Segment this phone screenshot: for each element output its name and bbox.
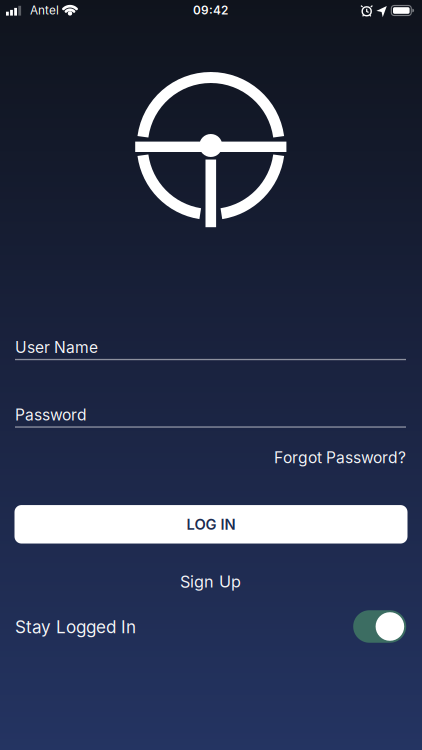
staticText: LOG IN [186, 515, 235, 533]
staticText: Password [15, 405, 87, 424]
button[interactable]: User Name [15, 338, 406, 360]
staticText: Antel [30, 3, 59, 17]
staticText: Stay Logged In [15, 617, 136, 637]
button[interactable]: Stay Logged In [353, 610, 406, 643]
button[interactable]: Password [15, 405, 406, 428]
staticText: Sign Up [180, 572, 241, 591]
staticText: Forgot Password? [274, 448, 406, 467]
staticText: User Name [15, 338, 98, 357]
button[interactable]: LOG IN [14, 505, 407, 543]
button[interactable]: Sign Up [180, 572, 241, 591]
button[interactable]: Forgot Password? [274, 448, 406, 467]
staticText: 09:42 [193, 3, 228, 17]
